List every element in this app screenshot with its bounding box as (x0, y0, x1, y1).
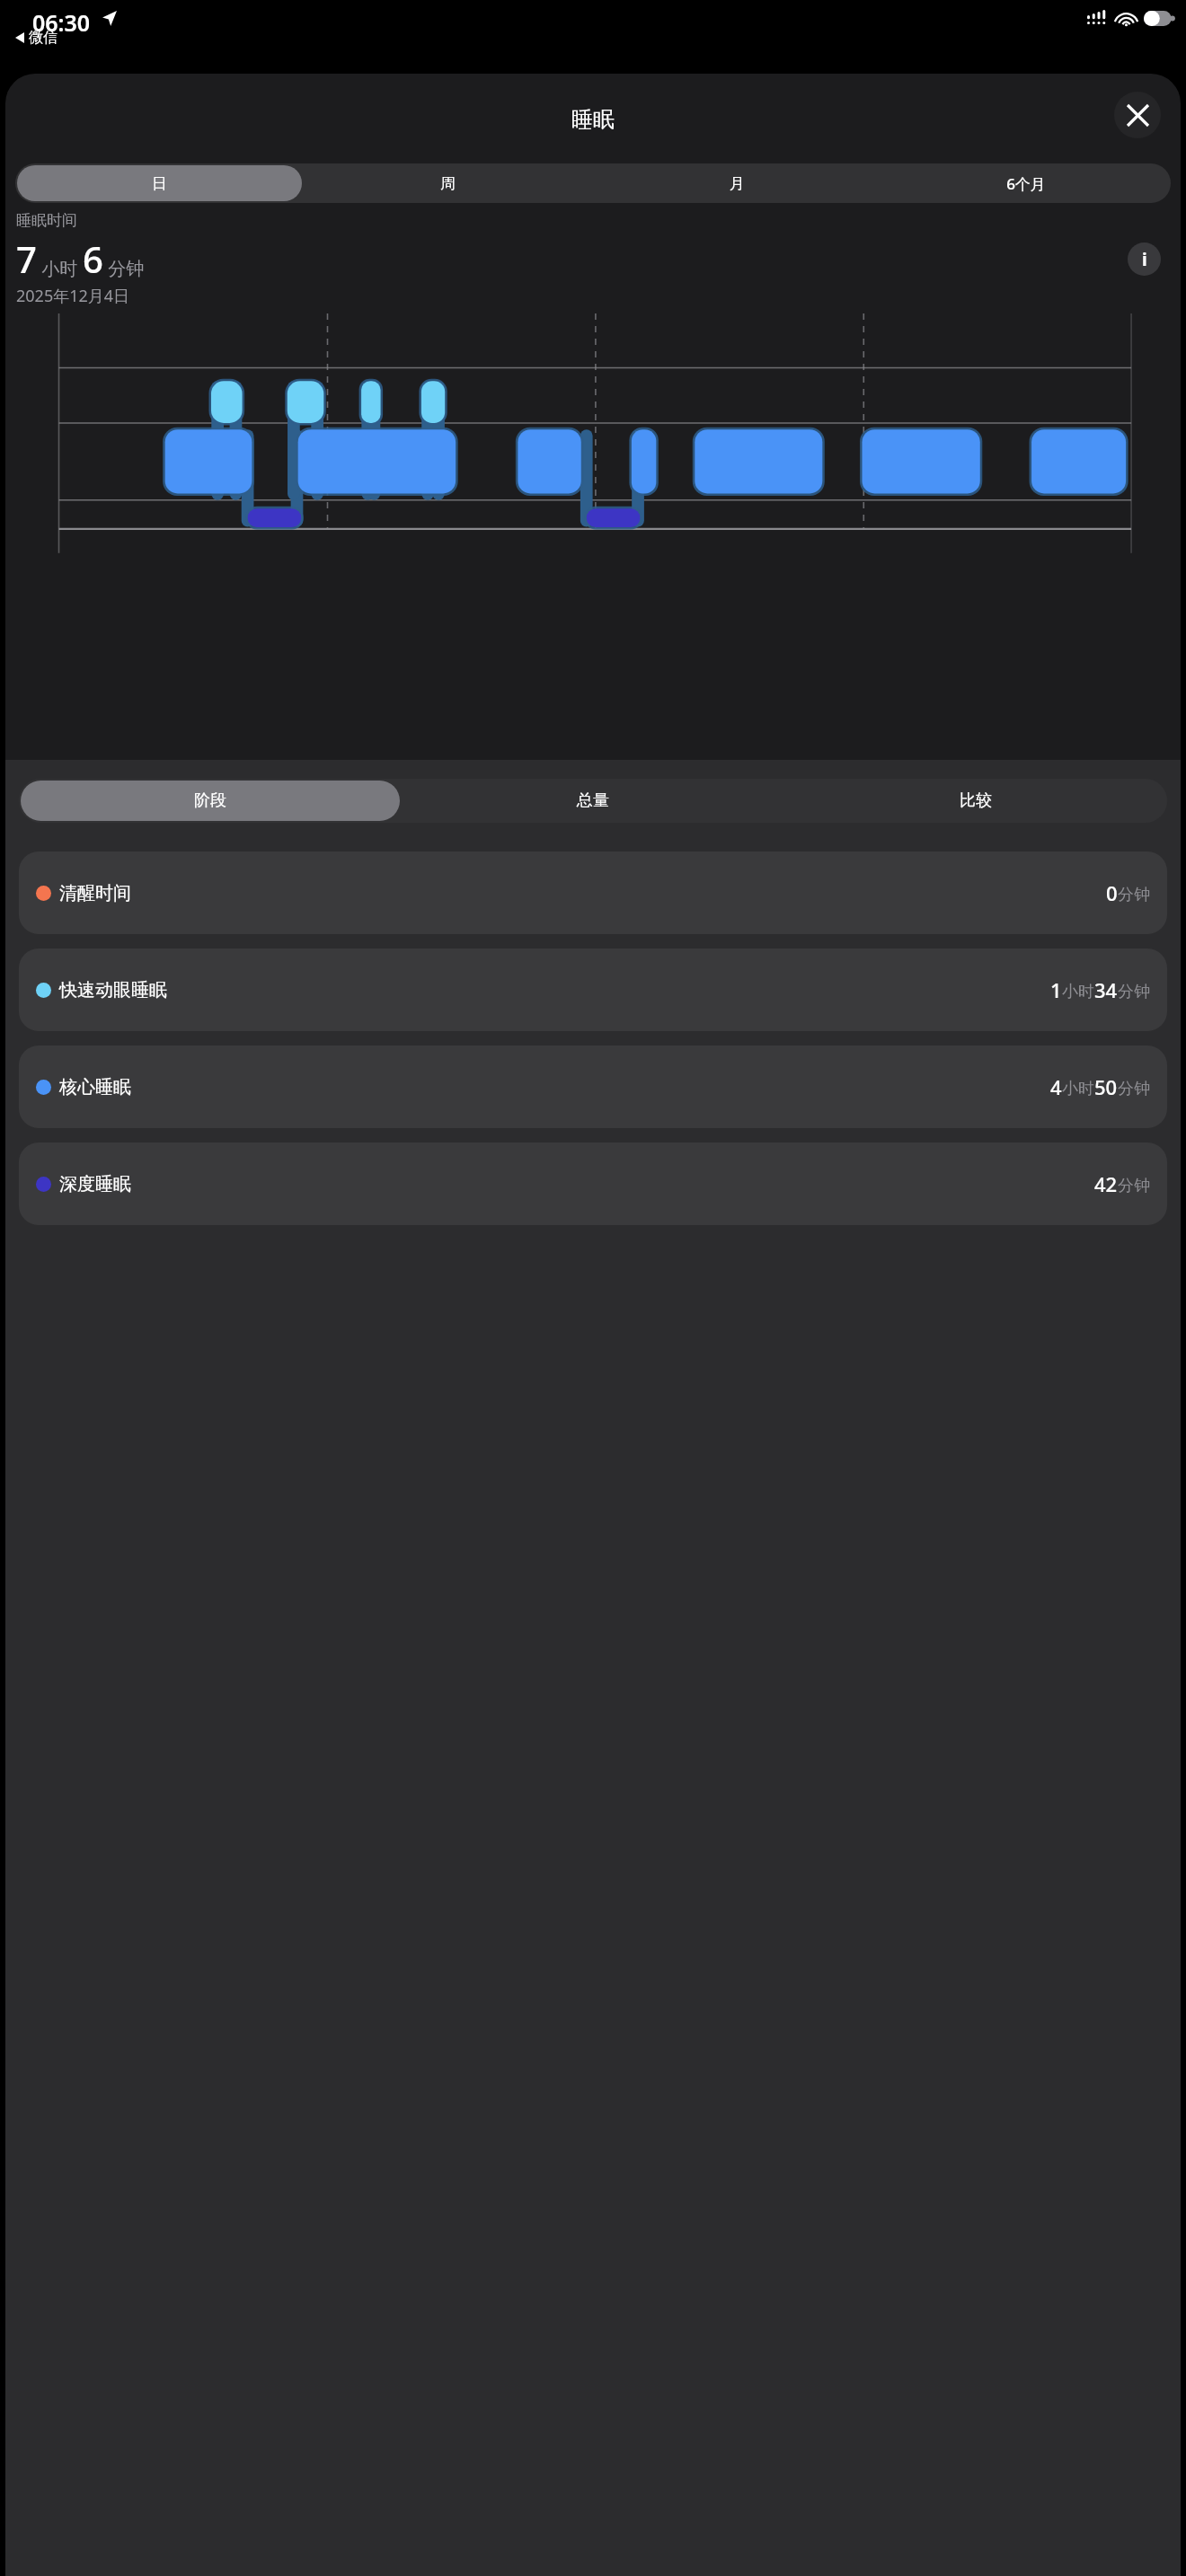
staticText: 清醒时间 (59, 882, 131, 904)
staticText: 深度睡眠 (59, 1173, 131, 1195)
button[interactable]: 比较 (786, 781, 1165, 821)
staticText: 小时 (1062, 982, 1094, 1002)
staticText: 总量 (577, 790, 609, 811)
staticText: 分钟 (1118, 982, 1150, 1002)
staticText: 分钟 (1118, 885, 1150, 905)
staticText: 月 (730, 174, 745, 193)
staticText: 比较 (960, 790, 992, 811)
staticText: 1 (1050, 976, 1062, 1003)
staticText: 日 (152, 174, 167, 193)
staticText: 分钟 (1118, 1176, 1150, 1196)
staticText: 快速动眼睡眠 (59, 979, 167, 1001)
staticText: 6 (83, 234, 103, 283)
staticText: 2025年12月4日 (16, 285, 130, 307)
staticText: 小时 (1062, 1079, 1094, 1099)
staticText: 7 (16, 234, 37, 283)
staticText: 34 (1094, 976, 1118, 1003)
staticText: 睡眠 (571, 106, 615, 133)
staticText: 分钟 (1118, 1079, 1150, 1099)
button[interactable]: 关闭 (1114, 92, 1161, 138)
button[interactable]: 日 (17, 165, 302, 201)
staticText: 周 (440, 174, 456, 193)
button[interactable]: 清醒时间 (19, 851, 1167, 934)
button[interactable]: 阶段 (21, 781, 400, 821)
staticText: 核心睡眠 (59, 1076, 131, 1098)
button[interactable]: 周 (305, 165, 590, 201)
staticText: 42 (1094, 1170, 1118, 1197)
button[interactable]: 快速动眼睡眠 (19, 948, 1167, 1031)
staticText: 4 (1050, 1073, 1062, 1100)
staticText: 睡眠时间 (16, 211, 77, 230)
staticText: 0 (1106, 879, 1118, 906)
button[interactable]: 核心睡眠 (19, 1045, 1167, 1128)
staticText: 06:30 (32, 7, 91, 38)
button[interactable]: 6个月 (883, 165, 1169, 201)
staticText: 阶段 (194, 790, 226, 811)
staticText: 50 (1094, 1073, 1118, 1100)
button[interactable]: 深度睡眠 (19, 1142, 1167, 1225)
staticText: 微信 (29, 29, 58, 47)
staticText: 6个月 (1006, 173, 1046, 194)
staticText: i (1142, 248, 1147, 271)
button[interactable]: 信息 (1128, 243, 1161, 276)
staticText: 分钟 (103, 256, 145, 280)
button[interactable]: 月 (594, 165, 880, 201)
staticText: 小时 (37, 256, 83, 280)
button[interactable]: 总量 (403, 781, 783, 821)
